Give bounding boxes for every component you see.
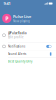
- staticText: Notifications: [8, 45, 25, 48]
- staticText: Pulse Live: [13, 14, 31, 19]
- button[interactable]: Sound Alerts: [0, 50, 56, 58]
- staticText: P: [5, 15, 8, 22]
- button[interactable]: Notifications: [0, 43, 56, 50]
- staticText: Now playing: [13, 19, 30, 23]
- staticText: Best Quality Only: [8, 60, 32, 63]
- staticText: @PulseRadio: [8, 31, 27, 35]
- staticText: 9:41: [3, 1, 10, 6]
- staticText: Edit profile: [8, 35, 24, 39]
- staticText: Sound Alerts: [8, 52, 26, 56]
- button[interactable]: Best Quality Only: [0, 58, 56, 65]
- button[interactable]: @PulseRadio: [0, 25, 56, 42]
